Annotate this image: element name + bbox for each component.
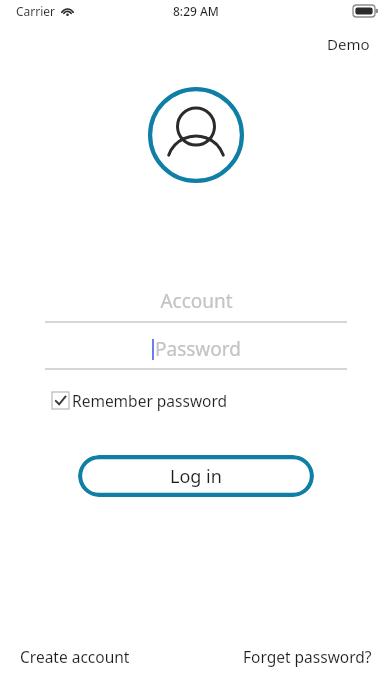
staticText: Remember password xyxy=(72,390,228,411)
button[interactable]: Demo xyxy=(319,30,378,58)
button[interactable]: Create account xyxy=(12,641,138,672)
staticText: Password xyxy=(155,336,241,362)
button[interactable]: Account xyxy=(45,281,347,321)
staticText: 8:29 AM xyxy=(173,3,219,19)
button[interactable]: Forget password? xyxy=(235,641,380,672)
button[interactable]: Log in xyxy=(78,455,314,497)
staticText: Demo xyxy=(327,34,370,54)
button[interactable]: Remember password xyxy=(52,388,234,413)
staticText: Carrier xyxy=(16,3,56,19)
staticText: Create account xyxy=(20,646,130,667)
staticText: Forget password? xyxy=(243,646,372,667)
staticText: Account xyxy=(160,288,233,314)
button[interactable]: Password xyxy=(45,329,347,368)
staticText: Log in xyxy=(170,464,222,489)
